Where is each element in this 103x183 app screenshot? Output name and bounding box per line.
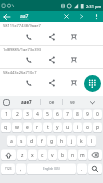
button[interactable]: [84, 75, 101, 92]
button[interactable]: t: [43, 121, 52, 134]
button[interactable]: 58x443x26a710c7: [0, 69, 103, 91]
staticText: p: [96, 124, 100, 131]
button[interactable]: 1: [1, 108, 11, 121]
staticText: m: [80, 152, 85, 159]
staticText: f: [41, 138, 43, 145]
button[interactable]: [82, 96, 103, 108]
staticText: x: [31, 152, 34, 159]
staticText: v: [51, 152, 54, 159]
button[interactable]: [48, 33, 56, 41]
button[interactable]: [3, 13, 11, 21]
button[interactable]: p: [93, 121, 102, 134]
button[interactable]: [25, 79, 33, 87]
button[interactable]: c: [38, 148, 47, 162]
staticText: 6: [56, 111, 59, 118]
button[interactable]: x: [28, 148, 37, 162]
button[interactable]: [70, 56, 78, 64]
button[interactable]: [88, 148, 102, 162]
button[interactable]: 7: [63, 108, 72, 121]
staticText: y: [56, 124, 59, 131]
button[interactable]: 58115x77438/9aae7: [0, 22, 103, 45]
button[interactable]: y: [53, 121, 62, 134]
staticText: e: [26, 124, 29, 131]
button[interactable]: m: [78, 148, 87, 162]
staticText: b: [61, 152, 65, 159]
button[interactable]: d: [27, 134, 36, 148]
staticText: 4: [36, 111, 39, 118]
button[interactable]: u: [63, 121, 72, 134]
button[interactable]: oe: [41, 96, 62, 108]
button[interactable]: z: [17, 148, 27, 162]
staticText: h: [60, 138, 64, 145]
staticText: 3: [26, 111, 29, 118]
button[interactable]: h: [57, 134, 66, 148]
button[interactable]: b: [58, 148, 67, 162]
button[interactable]: [25, 56, 33, 64]
button[interactable]: [78, 13, 85, 20]
button[interactable]: n: [68, 148, 77, 162]
button[interactable]: 2: [12, 108, 22, 121]
staticText: 9: [86, 111, 89, 118]
button[interactable]: aae7: [13, 96, 40, 108]
button[interactable]: w: [12, 121, 22, 134]
button[interactable]: q: [1, 121, 11, 134]
staticText: a: [10, 138, 13, 145]
button[interactable]: ?123: [1, 162, 15, 176]
button[interactable]: j: [67, 134, 76, 148]
button[interactable]: [48, 56, 56, 64]
staticText: 58x443x26a710c7: [3, 70, 37, 75]
button[interactable]: e: [23, 121, 32, 134]
button[interactable]: [48, 79, 56, 87]
staticText: 8: [76, 111, 79, 118]
staticText: 1d89885/1ae73x393: [3, 47, 42, 52]
button[interactable]: v: [48, 148, 57, 162]
button[interactable]: [93, 13, 100, 20]
button[interactable]: [70, 33, 78, 41]
button[interactable]: 9: [83, 108, 92, 121]
staticText: o: [86, 124, 90, 131]
staticText: 58115x77438/9aae7: [3, 23, 41, 28]
button[interactable]: English (US): [27, 162, 76, 176]
staticText: z: [21, 152, 24, 159]
staticText: .: [81, 166, 83, 173]
staticText: 2: [16, 111, 19, 118]
staticText: d: [30, 138, 34, 145]
staticText: English (US): [43, 167, 60, 171]
button[interactable]: o: [83, 121, 92, 134]
button[interactable]: [0, 96, 13, 108]
button[interactable]: a: [7, 134, 16, 148]
button[interactable]: k: [77, 134, 86, 148]
button[interactable]: s: [17, 134, 26, 148]
button[interactable]: [88, 162, 102, 176]
staticText: 7: [66, 111, 69, 118]
staticText: 0: [96, 111, 99, 118]
button[interactable]: 6: [53, 108, 62, 121]
button[interactable]: l: [87, 134, 96, 148]
staticText: aae7: [21, 99, 32, 105]
button[interactable]: 4: [33, 108, 42, 121]
button[interactable]: g: [47, 134, 56, 148]
staticText: i: [77, 124, 79, 131]
button[interactable]: ve: [63, 96, 82, 108]
staticText: s: [20, 138, 23, 145]
staticText: w: [15, 124, 19, 131]
staticText: t: [47, 124, 49, 131]
button[interactable]: [63, 13, 70, 20]
button[interactable]: .: [77, 162, 87, 176]
button[interactable]: r: [33, 121, 42, 134]
button[interactable]: [1, 148, 16, 162]
button[interactable]: [70, 79, 78, 87]
button[interactable]: [25, 33, 33, 41]
button[interactable]: 8: [73, 108, 82, 121]
button[interactable]: i: [73, 121, 82, 134]
button[interactable]: ,: [16, 162, 26, 176]
staticText: u: [66, 124, 70, 131]
staticText: c: [41, 152, 44, 159]
button[interactable]: 0: [93, 108, 102, 121]
button[interactable]: 3: [23, 108, 32, 121]
button[interactable]: 1d89885/1ae73x393: [0, 46, 103, 68]
staticText: 1: [5, 111, 8, 118]
button[interactable]: f: [37, 134, 46, 148]
button[interactable]: 5: [43, 108, 52, 121]
staticText: 5: [46, 111, 49, 118]
